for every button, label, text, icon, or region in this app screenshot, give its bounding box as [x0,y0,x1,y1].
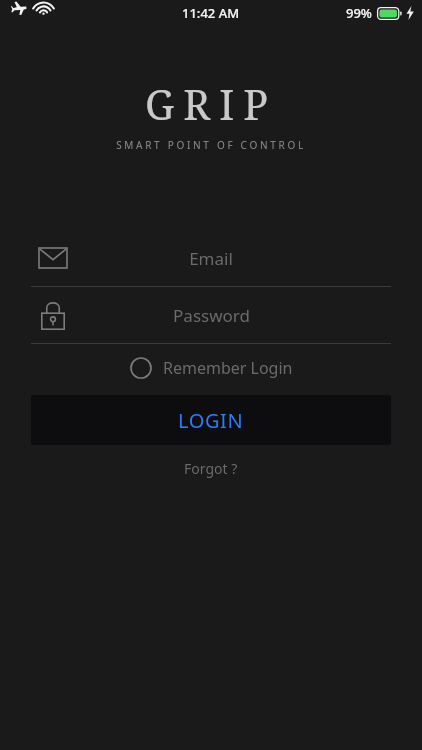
staticText: Remember Login [163,357,293,379]
button[interactable]: Remember Login [124,349,299,387]
button[interactable]: Forgot ? [170,454,252,483]
button[interactable]: Email [31,230,391,286]
staticText: SMART POINT OF CONTROL [116,138,306,152]
staticText: 11:42 AM [182,4,240,22]
staticText: 99% [346,4,372,22]
staticText: LOGIN [178,407,244,434]
other: Email [39,248,67,268]
button[interactable]: Password [31,287,391,343]
staticText: GRIP [145,76,277,132]
other: Password [41,300,65,330]
staticText: Password [173,304,250,327]
staticText: Email [189,247,233,270]
button[interactable]: LOGIN [31,395,391,445]
